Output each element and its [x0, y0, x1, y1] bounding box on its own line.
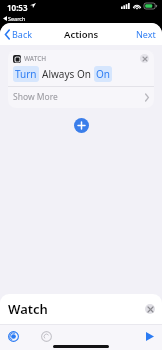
button[interactable]: Remove action [140, 54, 149, 63]
button[interactable]: Run shortcut [143, 329, 157, 344]
staticText: Actions [64, 28, 99, 41]
staticText: Back [12, 28, 33, 40]
button[interactable]: Next [130, 25, 162, 43]
button[interactable]: Show More [8, 87, 154, 108]
button[interactable]: Clear search [145, 304, 155, 314]
staticText: WATCH [24, 54, 47, 63]
staticText: 10:53 [7, 2, 28, 13]
staticText: Search [8, 15, 26, 22]
button[interactable]: Turn [13, 66, 39, 82]
staticText: Watch [8, 300, 48, 318]
staticText: Next [136, 28, 156, 40]
button[interactable]: On [94, 66, 112, 82]
button[interactable]: Shortcut details [5, 328, 22, 345]
staticText: Turn [15, 67, 37, 81]
staticText: On [96, 67, 110, 81]
button[interactable]: Add action [74, 118, 89, 133]
staticText: Show More [13, 91, 58, 103]
button[interactable]: Undo [38, 328, 55, 345]
staticText: Always On [42, 67, 91, 81]
button[interactable]: Watch [0, 294, 162, 324]
button[interactable]: WATCH [8, 50, 154, 108]
button[interactable]: Back [0, 25, 38, 43]
